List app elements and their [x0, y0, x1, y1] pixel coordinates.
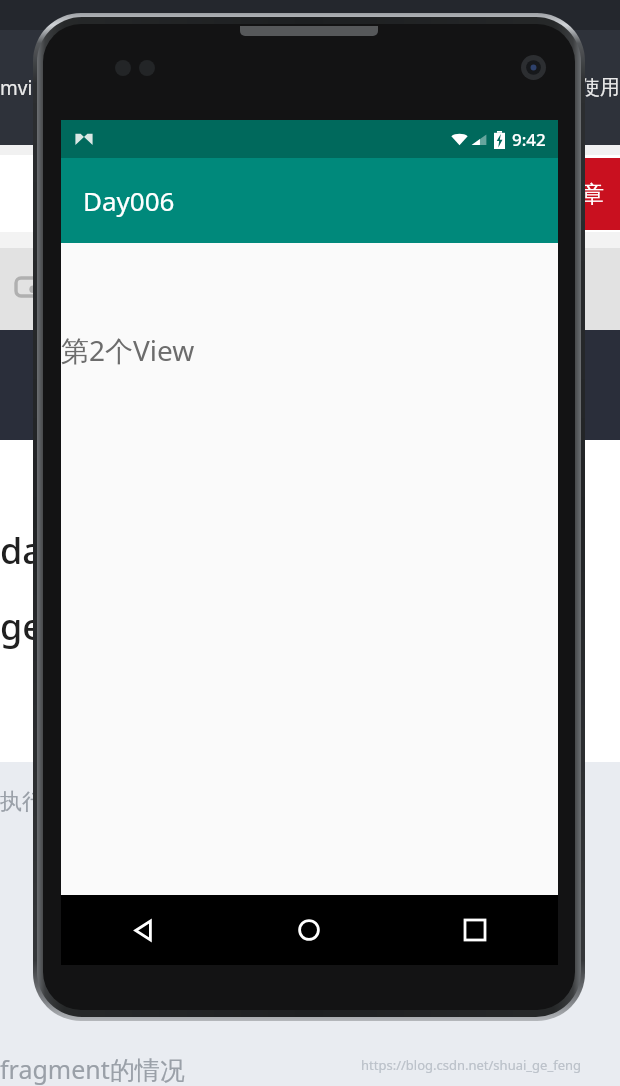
button[interactable]: Recent apps	[392, 895, 558, 965]
button[interactable]: Back	[61, 895, 226, 965]
button[interactable]: Day006	[61, 158, 558, 243]
staticText: 9:42	[512, 128, 546, 151]
staticText: fragment的情况	[0, 1052, 185, 1086]
staticText: https://blog.csdn.net/shuai_ge_feng	[361, 1056, 582, 1074]
staticText: 使用	[580, 75, 620, 100]
staticText: mvi	[0, 75, 33, 101]
staticText: ge	[0, 602, 43, 651]
button[interactable]: Home	[226, 895, 392, 965]
staticText: 执行	[0, 788, 44, 816]
staticText: 第2个View	[61, 331, 195, 369]
staticText: da	[0, 526, 43, 575]
staticText: Day006	[83, 183, 175, 218]
staticText: 章	[581, 180, 604, 209]
